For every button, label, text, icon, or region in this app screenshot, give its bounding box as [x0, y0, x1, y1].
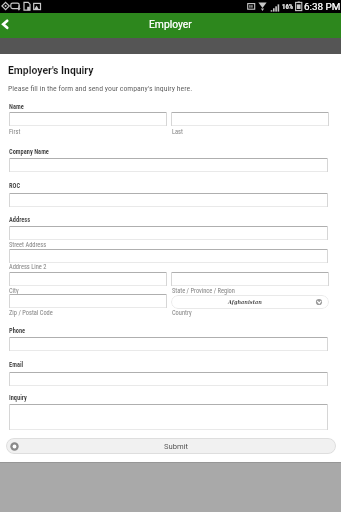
button[interactable]: State / Province / Region: [171, 272, 329, 286]
button[interactable]: Street Address: [9, 226, 328, 240]
staticText: Address: [9, 216, 31, 224]
staticText: Submit: [164, 442, 188, 451]
staticText: Country: [172, 309, 192, 317]
button[interactable]: Inquiry: [9, 404, 328, 430]
staticText: First: [9, 128, 21, 136]
button[interactable]: ROC: [9, 193, 328, 207]
staticText: Name: [9, 103, 24, 111]
staticText: Address Line 2: [9, 263, 47, 271]
staticText: Please fill in the form and send your co…: [8, 84, 193, 93]
button[interactable]: Address Line 2: [9, 249, 328, 263]
staticText: Inquiry: [9, 394, 27, 402]
staticText: City: [9, 287, 19, 295]
staticText: Street Address: [9, 241, 47, 249]
staticText: Employer: [149, 18, 192, 30]
staticText: 16%: [282, 3, 294, 11]
button[interactable]: Email: [9, 372, 328, 386]
button[interactable]: Phone: [9, 337, 328, 351]
button[interactable]: Country: [171, 295, 329, 309]
staticText: 6:38 PM: [304, 1, 341, 13]
staticText: Employer's Inquiry: [8, 64, 94, 76]
staticText: Company Name: [9, 148, 49, 156]
button[interactable]: City: [9, 272, 167, 286]
staticText: Last: [172, 128, 183, 136]
staticText: ROC: [9, 182, 21, 190]
staticText: Email: [9, 361, 24, 369]
button[interactable]: Back: [0, 15, 22, 37]
button[interactable]: First name: [9, 112, 167, 126]
staticText: State / Province / Region: [172, 287, 235, 295]
button[interactable]: Zip / Postal Code: [9, 294, 167, 308]
button[interactable]: Company Name: [9, 158, 328, 172]
button[interactable]: Last name: [171, 112, 329, 126]
staticText: Zip / Postal Code: [9, 309, 53, 317]
staticText: Phone: [9, 327, 26, 335]
button[interactable]: Submit: [6, 438, 336, 454]
staticText: Afghanistan: [228, 299, 262, 305]
